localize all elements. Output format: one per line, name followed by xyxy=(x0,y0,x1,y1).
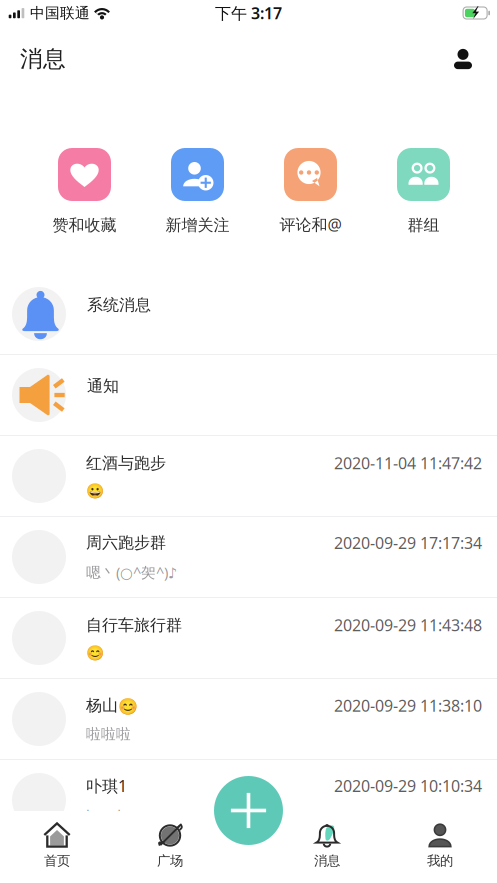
staticText: 自行车旅行群 xyxy=(86,615,182,635)
staticText: 评论和@ xyxy=(279,214,341,235)
button[interactable]: 评论和@ xyxy=(254,148,367,235)
button[interactable]: 系统消息 xyxy=(0,274,497,355)
staticText: 中国联通 xyxy=(30,4,90,22)
staticText: 😊 xyxy=(86,645,104,661)
staticText: 新增关注 xyxy=(165,215,229,235)
button[interactable]: 赞和收藏 xyxy=(28,148,141,235)
button[interactable]: 首页 xyxy=(0,811,113,883)
staticText: 消息 xyxy=(314,853,340,869)
button[interactable]: Profile xyxy=(441,37,485,81)
staticText: 下午 3:17 xyxy=(215,2,282,24)
button[interactable]: 通知 xyxy=(0,355,497,436)
staticText: 啦啦啦 xyxy=(86,725,131,743)
button[interactable]: 群组 xyxy=(367,148,480,235)
staticText: 我的 xyxy=(427,853,453,869)
staticText: 2020-11-04 11:47:42 xyxy=(334,452,482,474)
staticText: 嗯丶(○^㚙^)♪ xyxy=(86,562,177,582)
staticText: 赞和收藏 xyxy=(52,215,116,235)
button[interactable]: 我的 xyxy=(383,811,496,883)
button[interactable]: 红酒与跑步 xyxy=(0,436,497,517)
staticText: 卟琪1 xyxy=(86,775,127,796)
staticText: 周六跑步群 xyxy=(86,533,166,553)
staticText: 红酒与跑步 xyxy=(86,453,166,473)
staticText: 2020-09-29 11:43:48 xyxy=(334,614,482,636)
staticText: 系统消息 xyxy=(87,295,151,315)
staticText: 2020-09-29 17:17:34 xyxy=(334,532,482,553)
button[interactable]: 卟琪1 xyxy=(0,760,497,841)
staticText: haode xyxy=(86,805,129,825)
button[interactable]: 周六跑步群 xyxy=(0,517,497,598)
button[interactable]: 杨山😊 xyxy=(0,679,497,760)
button[interactable]: 广场 xyxy=(113,811,226,883)
staticText: 😀 xyxy=(86,483,104,499)
staticText: 广场 xyxy=(157,853,183,869)
button[interactable]: 新增关注 xyxy=(141,148,254,235)
staticText: 首页 xyxy=(44,853,70,869)
staticText: 消息 xyxy=(20,45,66,73)
button[interactable]: New message xyxy=(214,776,283,845)
staticText: 2020-09-29 10:10:34 xyxy=(334,775,482,796)
staticText: 通知 xyxy=(87,376,119,396)
staticText: 群组 xyxy=(407,215,439,235)
button[interactable]: 消息 xyxy=(270,811,383,883)
button[interactable]: 自行车旅行群 xyxy=(0,598,497,679)
staticText: 2020-09-29 11:38:10 xyxy=(334,695,482,716)
staticText: 杨山😊 xyxy=(86,696,138,715)
